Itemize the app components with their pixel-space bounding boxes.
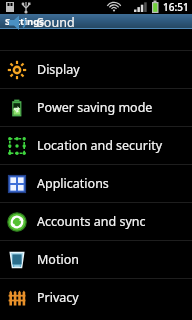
button[interactable]: Power saving mode — [0, 89, 192, 126]
button[interactable]: Motion — [0, 241, 192, 278]
staticText: Motion — [37, 251, 79, 268]
other: Accounts and sync — [7, 212, 27, 232]
other: Power saving mode — [7, 98, 27, 118]
staticText: Location and security — [37, 137, 163, 154]
other: Applications — [7, 174, 27, 194]
staticText: Applications — [37, 175, 109, 192]
staticText: Accounts and sync — [37, 213, 146, 230]
other: Motion — [7, 250, 27, 270]
button[interactable]: Accounts and sync — [0, 203, 192, 240]
staticText: 16:51 — [163, 0, 189, 14]
button[interactable]: Location and security — [0, 127, 192, 164]
button[interactable]: Privacy — [0, 279, 192, 316]
button[interactable]: Settings — [0, 14, 192, 29]
staticText: Sound — [37, 14, 75, 31]
staticText: Power saving mode — [37, 99, 153, 116]
button[interactable]: Display — [0, 51, 192, 88]
other: Location and security — [7, 136, 27, 156]
staticText: Privacy — [37, 289, 79, 306]
other: Sound — [7, 13, 27, 33]
button[interactable]: Applications — [0, 165, 192, 202]
other: Privacy — [7, 288, 27, 308]
staticText: Display — [37, 61, 80, 78]
other: Display — [7, 60, 27, 80]
staticText: Settings — [5, 15, 44, 28]
